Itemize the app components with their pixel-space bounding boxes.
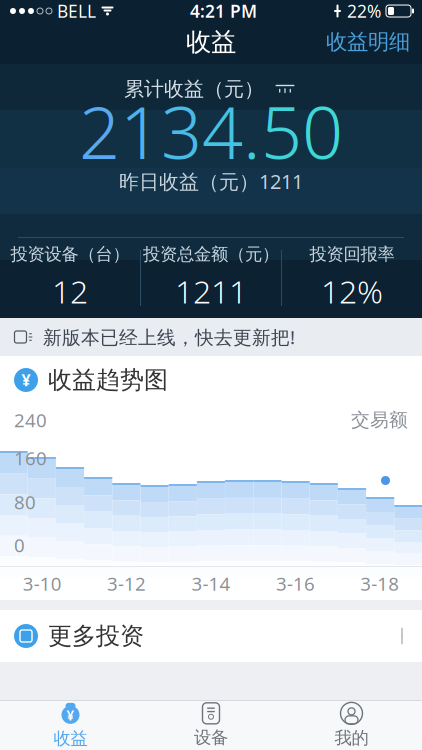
button[interactable]: 收益明细 <box>314 21 422 63</box>
staticText: 160 <box>14 446 47 470</box>
button[interactable]: 新版本已经上线，快去更新把! <box>0 318 422 356</box>
button[interactable]: 隐藏收益 <box>272 79 298 99</box>
staticText: 交易额 <box>351 408 408 431</box>
staticText: 1 <box>120 83 161 179</box>
staticText: 0 <box>302 83 343 179</box>
staticText: 12 <box>52 270 88 312</box>
staticText: 更多投资 <box>48 621 144 651</box>
staticText: 3 <box>161 83 202 179</box>
staticText: 新版本已经上线，快去更新把! <box>43 325 295 349</box>
staticText: 3-16 <box>276 571 315 596</box>
staticText: 昨日收益（元）1211 <box>119 168 303 195</box>
staticText: 收益趋势图 <box>48 365 168 395</box>
staticText: 投资总金额（元） <box>143 244 279 265</box>
staticText: 4 <box>202 83 243 179</box>
staticText: 投资回报率 <box>309 244 394 265</box>
staticText: 投资设备（台） <box>10 244 129 265</box>
staticText: 80 <box>14 490 36 514</box>
staticText: 3-18 <box>360 571 399 596</box>
staticText: 22% <box>347 0 381 22</box>
staticText: 累计收益（元） <box>124 77 264 101</box>
staticText: 我的 <box>334 727 368 749</box>
staticText: 5 <box>261 83 302 179</box>
staticText: 设备 <box>194 727 228 748</box>
staticText: 3-14 <box>191 571 230 596</box>
staticText: 3-12 <box>107 571 146 596</box>
staticText: ¥ <box>21 369 30 391</box>
staticText: 收益明细 <box>326 29 410 55</box>
staticText: 收益 <box>186 26 236 57</box>
button[interactable]: 设备 <box>140 701 281 750</box>
staticText: 3-10 <box>23 571 62 596</box>
staticText: BELL <box>57 0 96 22</box>
staticText: 4:21 PM <box>190 0 257 22</box>
staticText: 0 <box>14 533 25 557</box>
button[interactable]: 更多投资 <box>0 610 422 662</box>
button[interactable]: ¥ <box>0 701 140 750</box>
button[interactable]: 我的 <box>281 701 421 750</box>
staticText: 2 <box>79 83 120 179</box>
staticText: 12% <box>321 270 383 312</box>
staticText: . <box>243 83 261 179</box>
staticText: ¥ <box>66 706 74 724</box>
staticText: 240 <box>14 408 47 432</box>
staticText: 收益 <box>53 728 87 749</box>
staticText: 1211 <box>175 270 247 312</box>
